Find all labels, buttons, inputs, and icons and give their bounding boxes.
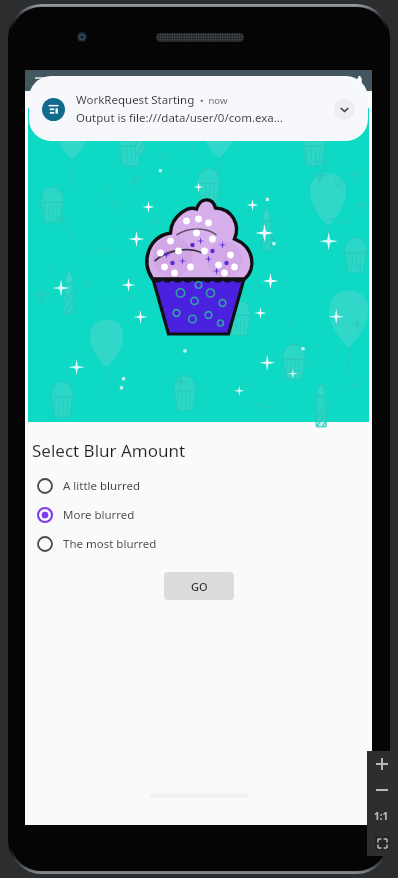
staticText: Select Blur Amount bbox=[32, 439, 186, 462]
button[interactable]: The most blurred bbox=[32, 529, 365, 558]
button[interactable]: Expand notification bbox=[334, 99, 355, 120]
button[interactable]: Zoom out bbox=[367, 777, 396, 803]
staticText: Output is file:///data/user/0/com.exa… bbox=[76, 110, 283, 126]
button[interactable]: WorkRequest Starting bbox=[29, 76, 368, 141]
button[interactable]: Zoom in bbox=[367, 751, 396, 777]
staticText: A little blurred bbox=[63, 478, 140, 494]
button[interactable]: GO bbox=[164, 572, 234, 600]
staticText: Blur-O-Matic bbox=[53, 74, 113, 88]
staticText: WorkRequest Starting bbox=[76, 92, 195, 108]
staticText: GO bbox=[191, 579, 208, 594]
staticText: More blurred bbox=[63, 507, 135, 523]
staticText: 1:1 bbox=[374, 809, 389, 823]
button[interactable]: 1:1 bbox=[367, 803, 396, 829]
button[interactable]: Fit to window bbox=[367, 829, 396, 856]
staticText: The most blurred bbox=[63, 536, 157, 552]
staticText: • now bbox=[195, 94, 228, 107]
button[interactable]: More blurred bbox=[32, 500, 365, 529]
button[interactable]: A little blurred bbox=[32, 471, 365, 500]
